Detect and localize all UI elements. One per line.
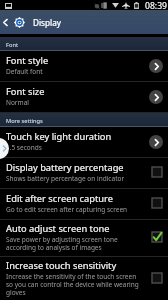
- staticText: 08:39: [145, 0, 167, 10]
- other: Toggle: [151, 197, 163, 209]
- button[interactable]: Increase touch sensitivity: [0, 257, 168, 300]
- staticText: Font style: [6, 54, 49, 67]
- staticText: Display battery percentage: [6, 161, 124, 174]
- staticText: 1.5 seconds: [6, 143, 42, 152]
- staticText: Auto adjust screen tone: [6, 222, 110, 235]
- button[interactable]: Auto adjust screen tone: [0, 220, 168, 256]
- staticText: Go to edit screen after capturing screen: [6, 205, 128, 214]
- staticText: Display: [33, 17, 61, 28]
- staticText: Font: [6, 41, 18, 49]
- staticText: More settings: [6, 117, 43, 125]
- staticText: Shows battery percentage on indicator: [6, 174, 125, 183]
- staticText: Default font: [6, 67, 43, 76]
- other: Toggle: [151, 272, 163, 284]
- staticText: Font size: [6, 85, 45, 98]
- staticText: Save power by adjusting screen tone acco…: [6, 235, 140, 252]
- other: Open: [149, 135, 163, 149]
- other: Open: [149, 59, 163, 73]
- staticText: Touch key light duration: [6, 130, 112, 143]
- other: Open: [149, 90, 163, 104]
- button[interactable]: Assistive menu: [0, 138, 9, 159]
- button[interactable]: Touch key light duration: [0, 127, 168, 157]
- button[interactable]: Edit after screen capture: [0, 189, 168, 219]
- button[interactable]: Font size: [0, 82, 168, 112]
- other: Toggle: [151, 231, 163, 243]
- button[interactable]: Font style: [0, 51, 168, 81]
- staticText: Normal: [6, 98, 29, 107]
- button[interactable]: Display battery percentage: [0, 158, 168, 188]
- other: Toggle: [151, 166, 163, 178]
- other: Back: [1, 18, 10, 27]
- staticText: Increase touch sensitivity: [6, 259, 117, 272]
- staticText: Edit after screen capture: [6, 192, 113, 205]
- staticText: Increase the sensitivity of the touch sc…: [6, 272, 140, 297]
- button[interactable]: Back: [0, 10, 168, 34]
